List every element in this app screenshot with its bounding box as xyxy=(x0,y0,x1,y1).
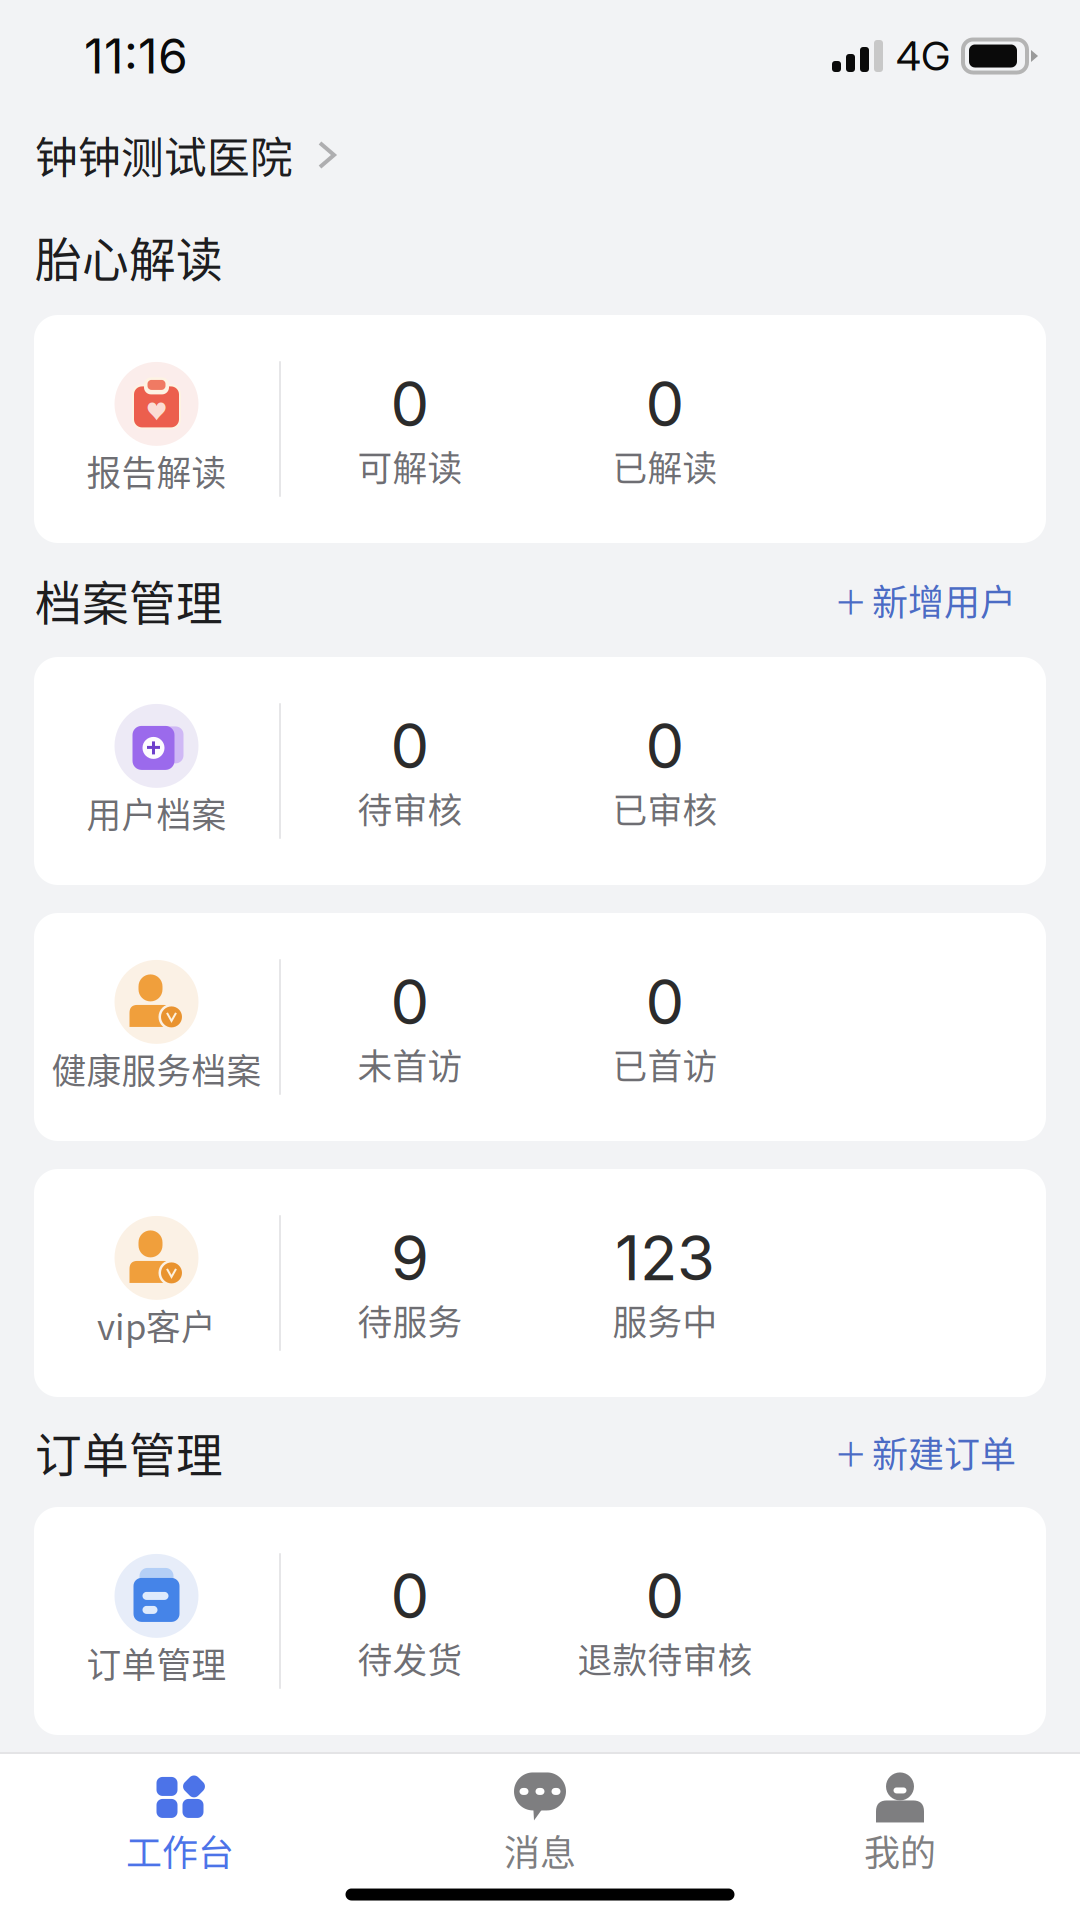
staticText: 已解读 xyxy=(612,441,717,491)
staticText: 9 xyxy=(391,1221,429,1295)
staticText: 新建订单 xyxy=(872,1426,1016,1478)
button[interactable]: 健康服务档案 xyxy=(34,913,1046,1141)
staticText: 待服务 xyxy=(357,1295,462,1345)
staticText: 待发货 xyxy=(357,1633,462,1683)
staticText: 待审核 xyxy=(357,783,462,833)
staticText: 报告解读 xyxy=(86,446,226,496)
button[interactable]: ＋ xyxy=(834,574,1016,626)
staticText: 档案管理 xyxy=(35,566,223,634)
staticText: 订单管理 xyxy=(35,1418,223,1486)
staticText: 工作台 xyxy=(126,1824,234,1876)
staticText: 0 xyxy=(645,709,684,783)
staticText: 可解读 xyxy=(357,441,462,491)
staticText: 退款待审核 xyxy=(577,1633,752,1683)
staticText: 0 xyxy=(390,1559,429,1633)
staticText: 0 xyxy=(390,709,429,783)
staticText: 已首访 xyxy=(612,1039,717,1089)
staticText: 0 xyxy=(390,367,429,441)
staticText: 订单管理 xyxy=(86,1638,226,1688)
staticText: ♥ xyxy=(146,394,167,425)
button[interactable]: vip客户 xyxy=(34,1169,1046,1397)
button[interactable]: ＋ xyxy=(834,1426,1016,1478)
button[interactable]: 订单管理 xyxy=(34,1507,1046,1735)
button[interactable]: 钟钟测试医院 xyxy=(35,124,336,186)
staticText: 0 xyxy=(645,965,684,1039)
staticText: 123 xyxy=(615,1221,715,1295)
staticText: ＋ xyxy=(834,1428,867,1476)
staticText: 11:16 xyxy=(84,27,188,85)
staticText: 4G xyxy=(896,32,950,80)
staticText: ＋ xyxy=(834,576,867,624)
staticText: 用户档案 xyxy=(86,788,226,838)
staticText: 0 xyxy=(390,965,429,1039)
staticText: 0 xyxy=(645,1559,684,1633)
staticText: 已审核 xyxy=(612,783,717,833)
staticText: 我的 xyxy=(864,1824,936,1876)
button[interactable]: 工作台 xyxy=(0,1772,360,1876)
button[interactable]: ♥ xyxy=(34,315,1046,543)
button[interactable]: 消息 xyxy=(360,1772,720,1876)
staticText: 钟钟测试医院 xyxy=(35,124,293,186)
staticText: 健康服务档案 xyxy=(51,1044,261,1094)
button[interactable]: 用户档案 xyxy=(34,657,1046,885)
staticText: 未首访 xyxy=(357,1039,462,1089)
staticText: 消息 xyxy=(504,1824,576,1876)
staticText: 新增用户 xyxy=(872,574,1016,626)
button[interactable]: 我的 xyxy=(720,1772,1080,1876)
staticText: 胎心解读 xyxy=(35,223,223,290)
staticText: 服务中 xyxy=(612,1295,717,1345)
staticText: vip客户 xyxy=(97,1300,216,1350)
staticText: 0 xyxy=(645,367,684,441)
